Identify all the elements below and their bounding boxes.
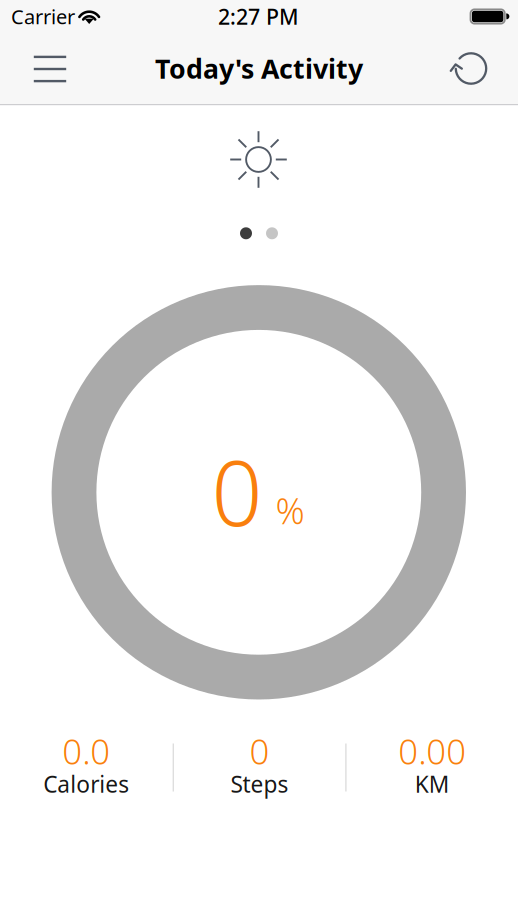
button[interactable]: Page 1 <box>240 227 252 239</box>
button[interactable]: 0.0 <box>43 728 129 799</box>
staticText: 0.00 <box>398 728 466 774</box>
staticText: Today's Activity <box>155 51 363 86</box>
button[interactable]: 0.00 <box>398 728 466 799</box>
button[interactable]: Page 2 <box>266 227 278 239</box>
staticText: 0.0 <box>62 728 110 774</box>
button[interactable]: Menu <box>17 35 83 101</box>
staticText: 0 <box>250 728 270 774</box>
staticText: Steps <box>231 769 289 799</box>
button[interactable]: Refresh <box>438 35 504 101</box>
staticText: Carrier <box>11 3 75 30</box>
staticText: 0 <box>211 432 262 551</box>
staticText: KM <box>415 769 450 799</box>
button[interactable]: 0 <box>231 728 289 799</box>
staticText: Calories <box>43 769 129 799</box>
button[interactable]: Daylight activity <box>229 130 287 188</box>
staticText: % <box>275 486 304 534</box>
staticText: 2:27 PM <box>218 2 299 31</box>
